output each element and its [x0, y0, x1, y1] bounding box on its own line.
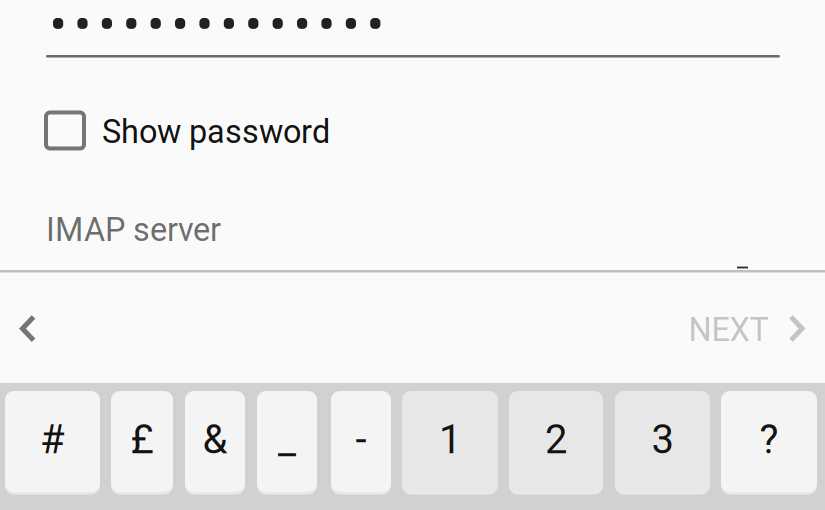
staticText: NEXT	[688, 311, 768, 349]
button[interactable]: ?	[721, 391, 817, 492]
button[interactable]: -	[331, 391, 391, 492]
staticText: IMAP server	[46, 211, 221, 249]
button[interactable]: £	[111, 391, 173, 492]
button[interactable]: Back	[0, 287, 60, 370]
staticText: _	[278, 416, 296, 463]
button[interactable]: _	[257, 391, 317, 492]
staticText: 3	[651, 416, 673, 463]
button[interactable]: Show password	[30, 96, 344, 165]
button[interactable]: 1	[402, 391, 498, 492]
staticText: 1	[439, 416, 461, 463]
staticText: #	[40, 416, 65, 463]
button[interactable]: &	[185, 391, 245, 492]
staticText: &	[202, 416, 227, 463]
staticText: ?	[759, 416, 778, 463]
button[interactable]: NEXT	[663, 280, 825, 377]
staticText: Show password	[102, 113, 330, 151]
staticText: £	[130, 416, 153, 463]
button[interactable]: 2	[509, 391, 603, 492]
staticText: 2	[545, 416, 567, 463]
button[interactable]: 3	[615, 391, 710, 492]
staticText: -	[355, 416, 366, 463]
button[interactable]: #	[5, 391, 100, 492]
